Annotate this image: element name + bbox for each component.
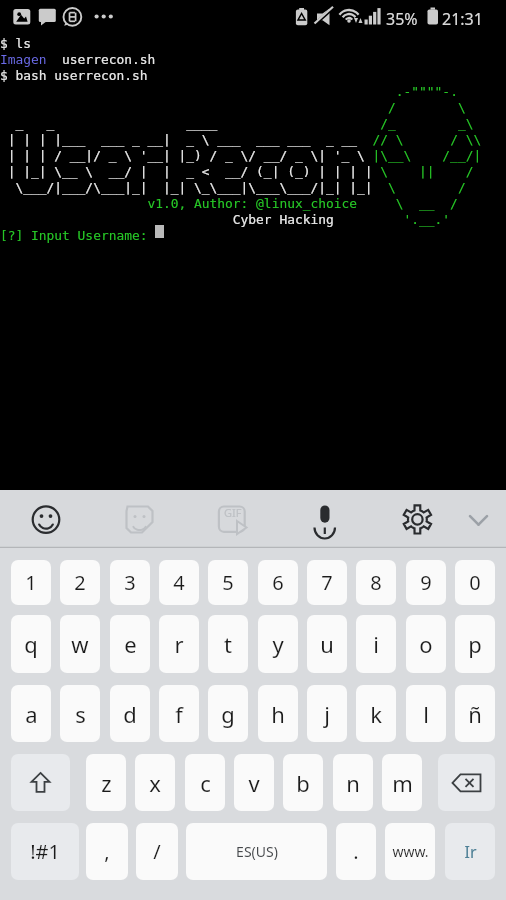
- button[interactable]: e: [110, 615, 150, 673]
- button[interactable]: ,: [86, 823, 128, 880]
- staticText: t: [224, 629, 232, 659]
- button[interactable]: .: [336, 823, 376, 880]
- button[interactable]: Ir: [445, 823, 495, 880]
- staticText: 7: [321, 569, 333, 596]
- staticText: 3: [124, 569, 136, 596]
- button[interactable]: $ ls Imagen userrecon.sh $ bash userreco…: [0, 36, 506, 490]
- button[interactable]: 7: [307, 560, 347, 605]
- button[interactable]: 6: [258, 560, 298, 605]
- button[interactable]: 3: [110, 560, 150, 605]
- staticText: .: [353, 838, 359, 865]
- staticText: ,: [104, 838, 110, 865]
- button[interactable]: 1: [11, 560, 51, 605]
- button[interactable]: p: [455, 615, 495, 673]
- button[interactable]: Hide keyboard: [450, 492, 506, 546]
- staticText: z: [101, 768, 112, 798]
- button[interactable]: s: [60, 685, 100, 742]
- button[interactable]: 9: [406, 560, 446, 605]
- button[interactable]: 4: [159, 560, 199, 605]
- staticText: Ir: [464, 841, 477, 863]
- staticText: l: [423, 699, 429, 729]
- staticText: u: [320, 629, 334, 659]
- staticText: r: [174, 629, 184, 659]
- button[interactable]: b: [283, 754, 323, 811]
- staticText: /: [153, 838, 161, 865]
- staticText: 9: [420, 569, 432, 596]
- staticText: p: [468, 629, 482, 659]
- button[interactable]: j: [307, 685, 347, 742]
- staticText: d: [123, 699, 137, 729]
- button[interactable]: h: [258, 685, 298, 742]
- staticText: x: [149, 768, 161, 798]
- staticText: 6: [272, 569, 284, 596]
- button[interactable]: /: [136, 823, 178, 880]
- staticText: a: [25, 699, 38, 729]
- button[interactable]: Settings: [390, 492, 446, 546]
- staticText: 2: [74, 569, 86, 596]
- staticText: n: [346, 768, 360, 798]
- staticText: o: [419, 629, 433, 659]
- button[interactable]: Stickers: [111, 492, 167, 546]
- staticText: v: [248, 768, 260, 798]
- button[interactable]: Voice input: [297, 492, 353, 546]
- staticText: c: [200, 768, 211, 798]
- staticText: ES(US): [236, 842, 278, 861]
- staticText: w: [71, 629, 89, 659]
- button[interactable]: n: [333, 754, 373, 811]
- staticText: 4: [173, 569, 185, 596]
- button[interactable]: r: [159, 615, 199, 673]
- button[interactable]: l: [406, 685, 446, 742]
- button[interactable]: !#1: [11, 823, 79, 880]
- button[interactable]: d: [110, 685, 150, 742]
- button[interactable]: 8: [356, 560, 396, 605]
- button[interactable]: 0: [455, 560, 495, 605]
- staticText: www.: [392, 842, 429, 861]
- button[interactable]: 2: [60, 560, 100, 605]
- staticText: q: [24, 629, 38, 659]
- button[interactable]: q: [11, 615, 51, 673]
- staticText: 1: [25, 569, 37, 596]
- button[interactable]: t: [208, 615, 248, 673]
- button[interactable]: x: [135, 754, 175, 811]
- button[interactable]: Backspace: [438, 754, 495, 811]
- staticText: 35%: [386, 8, 418, 30]
- button[interactable]: Emoji: [18, 492, 74, 546]
- button[interactable]: k: [356, 685, 396, 742]
- button[interactable]: v: [234, 754, 274, 811]
- staticText: 0: [469, 569, 481, 596]
- button[interactable]: 5: [208, 560, 248, 605]
- button[interactable]: u: [307, 615, 347, 673]
- button[interactable]: m: [382, 754, 422, 811]
- staticText: 5: [222, 569, 234, 596]
- staticText: !#1: [30, 838, 60, 865]
- staticText: 21:31: [442, 8, 483, 30]
- button[interactable]: c: [185, 754, 225, 811]
- button[interactable]: a: [11, 685, 51, 742]
- staticText: h: [271, 699, 285, 729]
- staticText: 8: [370, 569, 382, 596]
- button[interactable]: GIF: [204, 492, 260, 546]
- button[interactable]: i: [356, 615, 396, 673]
- staticText: s: [75, 699, 86, 729]
- button[interactable]: www.: [385, 823, 435, 880]
- staticText: b: [296, 768, 310, 798]
- button[interactable]: ñ: [455, 685, 495, 742]
- button[interactable]: g: [208, 685, 248, 742]
- button[interactable]: y: [258, 615, 298, 673]
- button[interactable]: Shift: [11, 754, 70, 811]
- button[interactable]: w: [60, 615, 100, 673]
- staticText: GIF: [224, 505, 242, 520]
- staticText: y: [272, 629, 284, 659]
- staticText: e: [124, 629, 137, 659]
- staticText: m: [392, 768, 413, 798]
- staticText: g: [221, 699, 235, 729]
- staticText: f: [175, 699, 183, 729]
- button[interactable]: ES(US): [186, 823, 327, 880]
- staticText: i: [373, 629, 379, 659]
- button[interactable]: z: [86, 754, 126, 811]
- staticText: ñ: [468, 699, 482, 729]
- staticText: k: [370, 699, 382, 729]
- staticText: $ ls Imagen userrecon.sh $ bash userreco…: [0, 36, 482, 244]
- button[interactable]: f: [159, 685, 199, 742]
- button[interactable]: o: [406, 615, 446, 673]
